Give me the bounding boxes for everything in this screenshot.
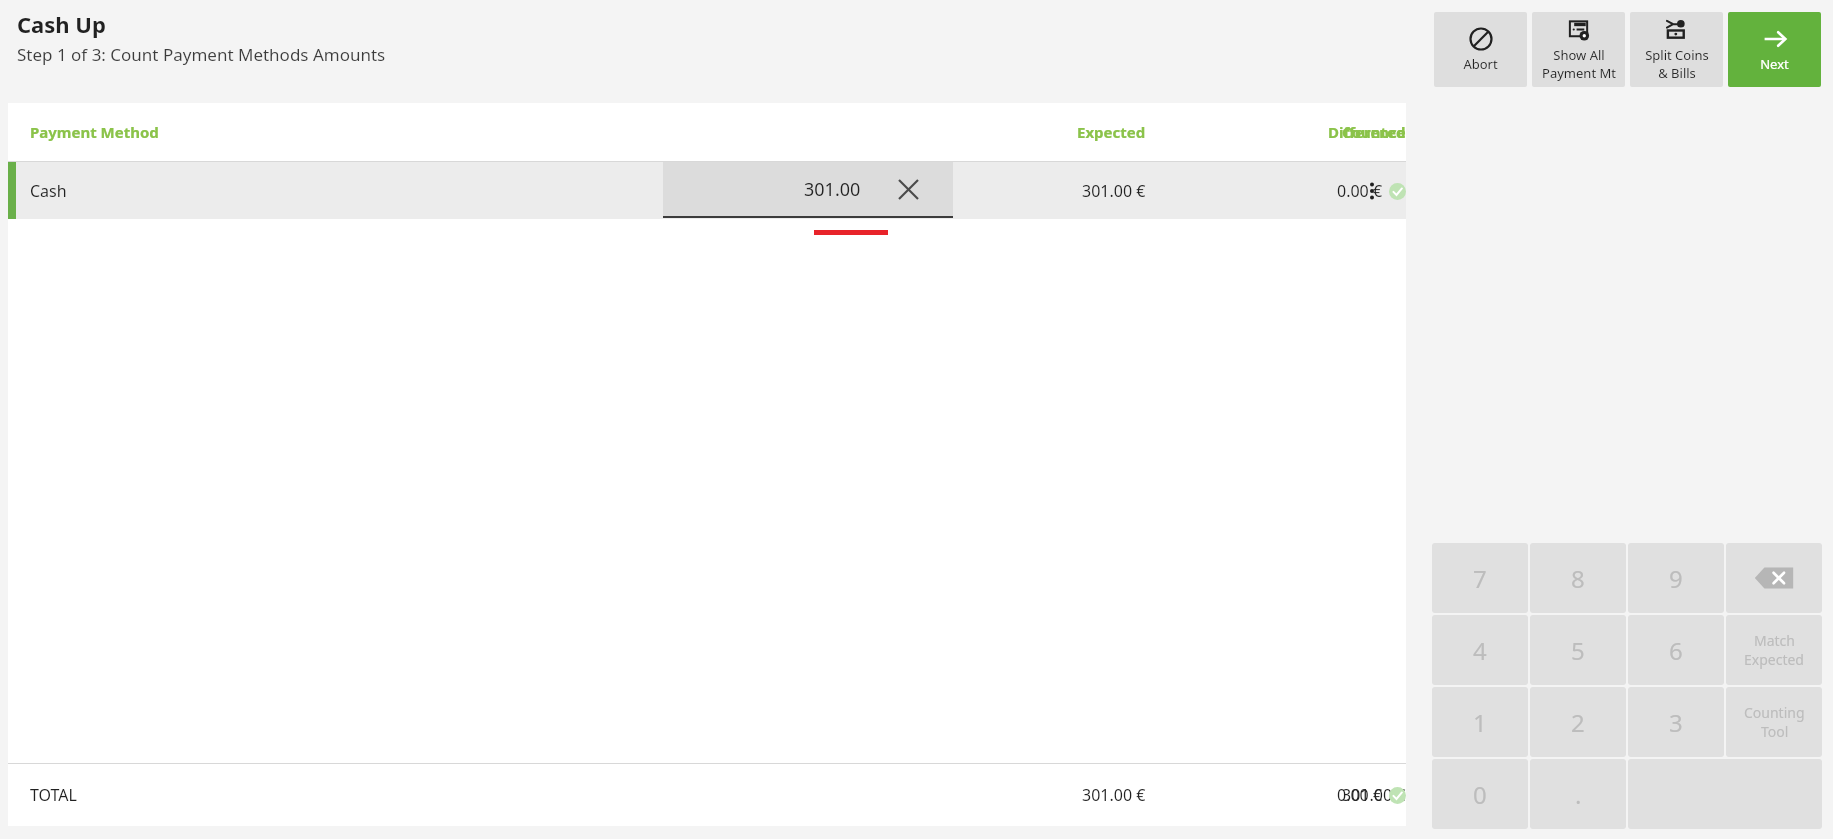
button[interactable]: Clear bbox=[893, 174, 923, 204]
staticText: 9 bbox=[1669, 562, 1683, 595]
staticText: 4 bbox=[1473, 634, 1487, 667]
staticText: & Bills bbox=[1658, 64, 1696, 82]
staticText: Step 1 of 3: Count Payment Methods Amoun… bbox=[17, 43, 386, 66]
button[interactable]: Cash bbox=[8, 162, 1406, 219]
staticText: Cash Up bbox=[17, 9, 106, 39]
button[interactable]: Match bbox=[1726, 615, 1822, 685]
staticText: Tool bbox=[1761, 722, 1789, 741]
staticText: 0.00 € bbox=[1337, 180, 1383, 202]
staticText: 3 bbox=[1669, 706, 1683, 739]
button[interactable]: 301.00 bbox=[663, 162, 953, 216]
button[interactable]: Split Coins & Bills bbox=[1630, 12, 1723, 87]
staticText: Show All bbox=[1553, 46, 1605, 64]
staticText: 6 bbox=[1669, 634, 1683, 667]
staticText: Abort bbox=[1463, 55, 1498, 73]
staticText: Split Coins bbox=[1645, 46, 1709, 64]
button[interactable]: Counting bbox=[1726, 687, 1822, 757]
staticText: 0.00 € bbox=[1337, 784, 1383, 806]
button[interactable]: Backspace bbox=[1726, 543, 1822, 613]
staticText: Difference bbox=[1328, 122, 1406, 142]
staticText: Payment Method bbox=[30, 122, 159, 142]
button[interactable]: Abort bbox=[1434, 12, 1527, 87]
staticText: 7 bbox=[1473, 562, 1487, 595]
staticText: Next bbox=[1760, 55, 1789, 73]
staticText: 301.00 € bbox=[1082, 180, 1146, 202]
button[interactable]: More options bbox=[1354, 173, 1390, 209]
staticText: 2 bbox=[1571, 706, 1585, 739]
button[interactable]: Next bbox=[1728, 12, 1821, 87]
staticText: 301.00 € bbox=[1082, 784, 1146, 806]
staticText: 0 bbox=[1473, 778, 1487, 811]
button[interactable]: 4 bbox=[1432, 615, 1528, 685]
staticText: Counted bbox=[1342, 122, 1406, 142]
button[interactable]: Show All Payment Mt bbox=[1532, 12, 1625, 87]
staticText: 8 bbox=[1571, 562, 1585, 595]
staticText: TOTAL bbox=[30, 784, 77, 806]
button[interactable]: 2 bbox=[1530, 687, 1626, 757]
button[interactable]: 8 bbox=[1530, 543, 1626, 613]
button[interactable]: 3 bbox=[1628, 687, 1724, 757]
staticText: Cash bbox=[30, 180, 67, 202]
button[interactable]: 9 bbox=[1628, 543, 1724, 613]
staticText: . bbox=[1575, 778, 1582, 811]
button[interactable]: 5 bbox=[1530, 615, 1626, 685]
other: Backspace bbox=[1754, 566, 1794, 590]
staticText: Counting bbox=[1744, 703, 1805, 722]
staticText: Expected bbox=[1077, 122, 1146, 142]
staticText: Match bbox=[1754, 631, 1795, 650]
staticText: 301.00 bbox=[804, 177, 861, 202]
staticText: 5 bbox=[1571, 634, 1585, 667]
staticText: 1 bbox=[1473, 706, 1487, 739]
button[interactable]: 0 bbox=[1432, 759, 1528, 829]
staticText: Payment Mt bbox=[1542, 64, 1616, 82]
staticText: 301.00 € bbox=[1342, 784, 1406, 806]
button[interactable]: 7 bbox=[1432, 543, 1528, 613]
staticText: Expected bbox=[1744, 650, 1804, 669]
button[interactable]: 6 bbox=[1628, 615, 1724, 685]
